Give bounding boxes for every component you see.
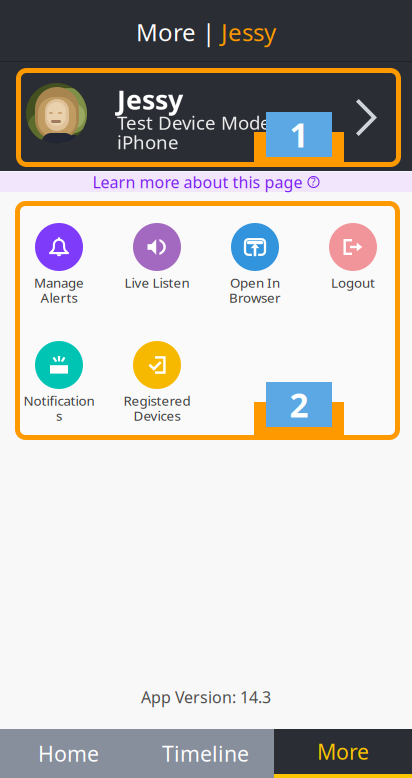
button[interactable]: More — [274, 729, 412, 778]
button[interactable]: Timeline — [137, 729, 274, 778]
staticText: Notification — [23, 392, 94, 409]
staticText: ? — [311, 174, 316, 189]
staticText: Open In — [230, 274, 280, 291]
button[interactable]: Notifications — [10, 341, 108, 431]
button[interactable]: Logout — [304, 223, 402, 313]
staticText: Jessy — [117, 82, 183, 117]
staticText: App Version: 14.3 — [141, 686, 271, 708]
button[interactable]: Jessy — [18, 70, 398, 164]
button[interactable]: Learn more about this page — [0, 172, 412, 192]
button[interactable]: Home — [0, 729, 137, 778]
staticText: Logout — [331, 274, 375, 291]
button[interactable]: Manage Alerts — [10, 223, 108, 313]
staticText: Jessy — [221, 16, 276, 48]
staticText: 1 — [289, 112, 308, 157]
staticText: Browser — [229, 289, 281, 306]
button[interactable]: Open In Browser — [206, 223, 304, 313]
staticText: Devices — [133, 407, 180, 424]
staticText: s — [56, 407, 62, 424]
staticText: Learn more about this page — [92, 171, 302, 193]
button[interactable]: Registered Devices — [108, 341, 206, 431]
staticText: More | — [136, 16, 221, 48]
staticText: Registered — [123, 392, 190, 409]
staticText: Test Device Model — [117, 110, 276, 135]
staticText: Home — [38, 739, 99, 768]
staticText: More — [317, 737, 369, 766]
staticText: Alerts — [40, 289, 77, 306]
staticText: Live Listen — [124, 274, 189, 291]
staticText: iPhone — [117, 130, 179, 154]
button[interactable]: Live Listen — [108, 223, 206, 313]
staticText: 2 — [289, 382, 308, 427]
staticText: Timeline — [162, 739, 249, 768]
staticText: Manage — [34, 274, 84, 291]
